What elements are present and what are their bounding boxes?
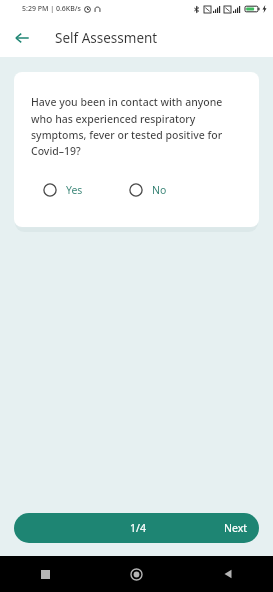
staticText: 1/4 xyxy=(130,521,146,535)
button[interactable]: Back xyxy=(182,556,273,592)
button[interactable]: 1/4 xyxy=(14,513,259,543)
button[interactable]: No xyxy=(127,180,169,200)
staticText: Yes xyxy=(66,183,83,197)
staticText: Have you been in contact with anyone who… xyxy=(31,95,245,158)
staticText: Next xyxy=(224,521,248,535)
staticText: No xyxy=(152,183,167,197)
staticText: Self Assessment xyxy=(55,29,158,47)
button[interactable]: Recent apps xyxy=(0,556,91,592)
staticText: 5:29 PM | 0.6KB/s xyxy=(22,4,81,14)
button[interactable]: Home xyxy=(91,556,182,592)
button[interactable]: Back xyxy=(8,24,36,52)
button[interactable]: Yes xyxy=(41,180,85,200)
